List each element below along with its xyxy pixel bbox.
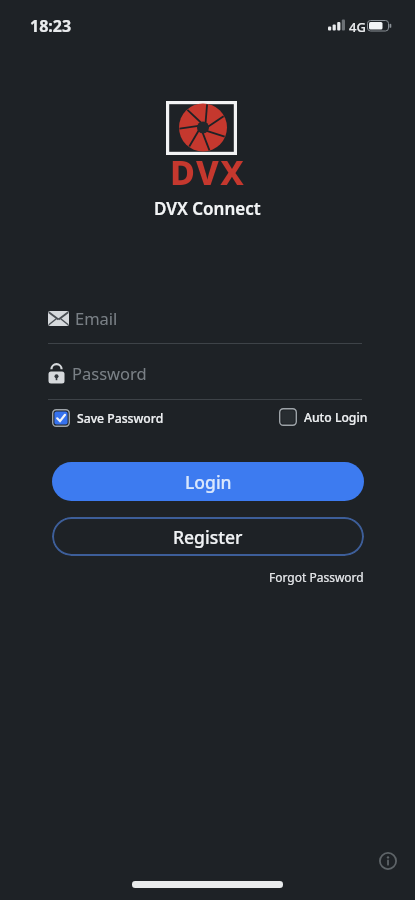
staticText: DVX Connect <box>154 197 261 220</box>
staticText: Register <box>173 525 243 549</box>
staticText: DVX <box>170 149 246 195</box>
staticText: Email <box>75 307 118 329</box>
button[interactable]: Password <box>48 360 364 386</box>
staticText: Forgot Password <box>269 569 364 585</box>
button[interactable]: Forgot Password <box>0 569 364 585</box>
button[interactable] <box>379 852 397 870</box>
button[interactable]: Email <box>48 305 364 331</box>
staticText: Password <box>72 362 147 384</box>
button[interactable]: Save Password <box>52 409 164 427</box>
button[interactable]: Register <box>52 517 364 556</box>
staticText: Auto Login <box>304 409 368 426</box>
staticText: 4G <box>349 18 366 36</box>
staticText: 18:23 <box>30 15 72 37</box>
button[interactable]: Auto Login <box>279 408 368 426</box>
button[interactable]: Login <box>52 462 364 501</box>
staticText: Login <box>185 470 232 494</box>
staticText: Save Password <box>77 410 164 427</box>
